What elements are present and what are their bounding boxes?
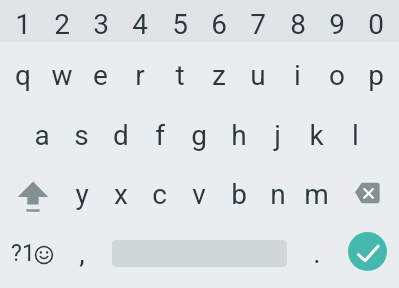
staticText: b [231, 178, 247, 211]
button[interactable]: 7 [238, 3, 277, 45]
staticText: 8 [290, 8, 306, 41]
button[interactable]: , [62, 224, 101, 283]
staticText: m [304, 178, 329, 211]
staticText: d [113, 119, 129, 152]
button[interactable]: 4 [120, 3, 159, 45]
staticText: h [231, 119, 247, 152]
staticText: x [114, 178, 128, 211]
button[interactable]: r [120, 46, 159, 105]
staticText: v [192, 178, 206, 211]
button[interactable]: m [297, 165, 336, 224]
staticText: 3 [93, 8, 109, 41]
staticText: g [191, 119, 207, 152]
staticText: 1 [15, 8, 31, 41]
button[interactable]: c [140, 165, 179, 224]
staticText: 2 [54, 8, 70, 41]
button[interactable]: f [140, 106, 179, 165]
button[interactable]: l [336, 106, 375, 165]
button[interactable]: . [297, 224, 336, 283]
button[interactable]: u [238, 46, 277, 105]
button[interactable]: Shift [3, 165, 62, 224]
staticText: ?1 [11, 240, 35, 267]
staticText: 9 [329, 8, 345, 41]
staticText: n [270, 178, 286, 211]
staticText: u [250, 59, 266, 92]
staticText: a [34, 119, 50, 152]
button[interactable]: p [356, 46, 395, 105]
button[interactable]: 0 [356, 3, 395, 45]
staticText: , [79, 237, 85, 270]
button[interactable]: Space [101, 224, 297, 283]
button[interactable]: t [160, 46, 199, 105]
staticText: . [313, 237, 321, 270]
button[interactable]: j [258, 106, 297, 165]
staticText: o [329, 59, 345, 92]
staticText: r [135, 59, 145, 92]
staticText: e [93, 59, 108, 92]
staticText: j [274, 119, 281, 152]
button[interactable]: d [101, 106, 140, 165]
button[interactable]: 3 [81, 3, 120, 45]
staticText: i [294, 59, 301, 92]
button[interactable]: 1 [3, 3, 42, 45]
button[interactable]: v [179, 165, 218, 224]
button[interactable]: g [179, 106, 218, 165]
button[interactable]: Symbols and emoji [3, 224, 62, 283]
button[interactable]: e [81, 46, 120, 105]
button[interactable]: Enter [338, 222, 397, 281]
staticText: w [51, 59, 73, 92]
staticText: q [15, 59, 31, 92]
staticText: c [152, 178, 167, 211]
button[interactable]: 2 [42, 3, 81, 45]
button[interactable]: w [42, 46, 81, 105]
staticText: p [368, 59, 384, 92]
button[interactable]: b [219, 165, 258, 224]
button[interactable]: k [297, 106, 336, 165]
staticText: 0 [368, 8, 384, 41]
staticText: 5 [172, 8, 188, 41]
staticText: s [74, 119, 89, 152]
staticText: l [352, 119, 359, 152]
button[interactable]: 6 [199, 3, 238, 45]
button[interactable]: Backspace [336, 165, 395, 224]
button[interactable]: a [22, 106, 61, 165]
button[interactable]: q [3, 46, 42, 105]
button[interactable]: y [62, 165, 101, 224]
staticText: y [75, 178, 89, 211]
staticText: 6 [211, 8, 227, 41]
button[interactable]: o [317, 46, 356, 105]
staticText: f [155, 119, 165, 152]
button[interactable]: h [219, 106, 258, 165]
staticText: 7 [250, 8, 266, 41]
button[interactable]: 8 [278, 3, 317, 45]
staticText: k [309, 119, 324, 152]
button[interactable]: 9 [317, 3, 356, 45]
button[interactable]: i [278, 46, 317, 105]
button[interactable]: n [258, 165, 297, 224]
staticText: 4 [132, 8, 148, 41]
staticText: z [212, 59, 226, 92]
button[interactable]: s [62, 106, 101, 165]
button[interactable]: 5 [160, 3, 199, 45]
button[interactable]: x [101, 165, 140, 224]
button[interactable]: z [199, 46, 238, 105]
staticText: t [175, 59, 185, 92]
